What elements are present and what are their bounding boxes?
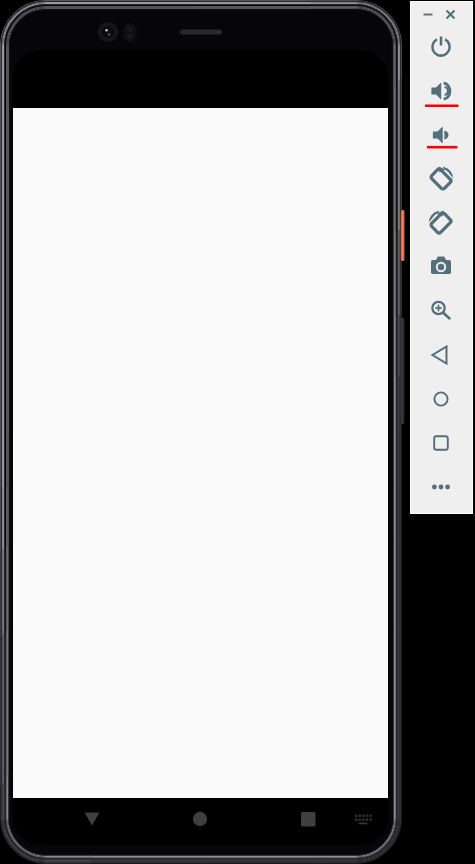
button[interactable]: Power bbox=[421, 27, 461, 67]
button[interactable]: Recent apps bbox=[421, 423, 461, 463]
button[interactable]: Zoom in bbox=[421, 290, 461, 330]
button[interactable]: Rotate left bbox=[421, 159, 461, 199]
button[interactable]: Volume down bbox=[421, 115, 461, 155]
button[interactable]: More options bbox=[421, 467, 461, 507]
button[interactable]: Rotate right bbox=[421, 203, 461, 243]
button[interactable]: Volume up bbox=[421, 71, 461, 111]
button[interactable]: Back bbox=[421, 335, 461, 375]
button[interactable]: Take screenshot bbox=[421, 246, 461, 286]
button[interactable]: Home bbox=[421, 379, 461, 419]
button[interactable]: Minimize bbox=[420, 6, 437, 23]
button[interactable]: Close bbox=[442, 6, 459, 23]
